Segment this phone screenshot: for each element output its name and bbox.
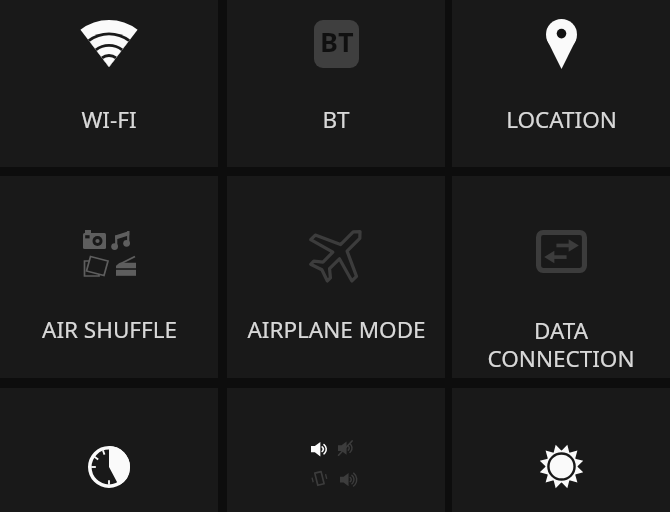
button[interactable]: Location [452, 0, 670, 167]
staticText: AIRPLANE MODE [247, 314, 426, 345]
button[interactable]: Bluetooth [227, 0, 445, 167]
staticText: AIR SHUFFLE [42, 314, 177, 345]
staticText: BT [320, 23, 354, 60]
button[interactable]: Air Shuffle [0, 176, 218, 378]
button[interactable]: Timer [0, 388, 218, 512]
staticText: BT [322, 104, 350, 135]
button[interactable]: Brightness [452, 388, 670, 512]
button[interactable]: Sound mode [227, 388, 445, 512]
staticText: WI-FI [81, 104, 137, 135]
staticText: DATA CONNECTION [487, 315, 635, 373]
button[interactable]: Data connection [452, 176, 670, 378]
button[interactable]: Airplane mode [227, 176, 445, 378]
staticText: LOCATION [506, 104, 617, 135]
button[interactable]: Wi-Fi [0, 0, 218, 167]
